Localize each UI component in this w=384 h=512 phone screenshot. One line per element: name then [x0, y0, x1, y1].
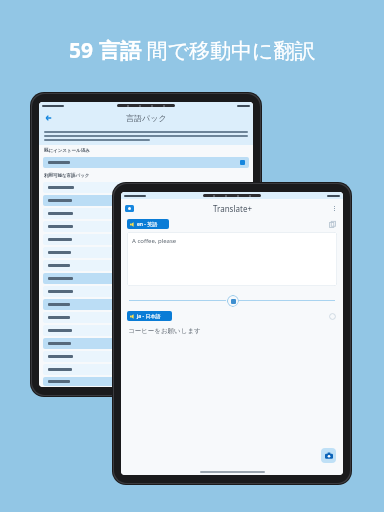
staticText: 利用可能な言語パック — [44, 173, 90, 179]
button[interactable] — [43, 338, 249, 349]
staticText: コーヒーをお願いします — [128, 327, 201, 335]
button[interactable] — [43, 221, 249, 232]
button[interactable]: Back — [43, 112, 55, 124]
button[interactable]: Copy translation — [329, 313, 336, 320]
staticText: en - 英語 — [137, 221, 158, 228]
button[interactable] — [43, 247, 249, 258]
button[interactable]: ja - 日本語 — [127, 311, 172, 321]
button[interactable] — [43, 299, 249, 310]
button[interactable] — [43, 351, 249, 362]
button[interactable] — [43, 312, 249, 323]
button[interactable] — [43, 364, 249, 375]
button[interactable]: en - 英語 — [127, 219, 169, 229]
button[interactable] — [43, 157, 249, 168]
button[interactable] — [43, 195, 249, 206]
button[interactable]: Translate — [226, 294, 239, 307]
staticText: A coffee, please — [132, 237, 177, 245]
button[interactable]: A coffee, please — [127, 232, 337, 286]
button[interactable] — [43, 286, 249, 297]
button[interactable] — [43, 182, 249, 193]
button[interactable] — [43, 260, 249, 271]
staticText: 間で移動中に翻訳 — [141, 36, 316, 65]
button[interactable]: Menu — [125, 205, 134, 212]
button[interactable] — [43, 325, 249, 336]
staticText: 言語 — [99, 38, 141, 64]
button[interactable] — [43, 273, 249, 284]
button[interactable] — [43, 377, 249, 386]
button[interactable] — [43, 208, 249, 219]
staticText: ja - 日本語 — [137, 313, 161, 320]
staticText: 既にインストール済み — [44, 148, 90, 154]
button[interactable] — [43, 234, 249, 245]
button[interactable]: Camera translate — [321, 448, 336, 463]
staticText: 言語パック — [126, 113, 167, 123]
staticText: 59 — [69, 36, 99, 65]
button[interactable]: More options — [331, 205, 338, 212]
button[interactable]: Copy — [329, 221, 336, 228]
staticText: Translate+ — [213, 203, 252, 214]
